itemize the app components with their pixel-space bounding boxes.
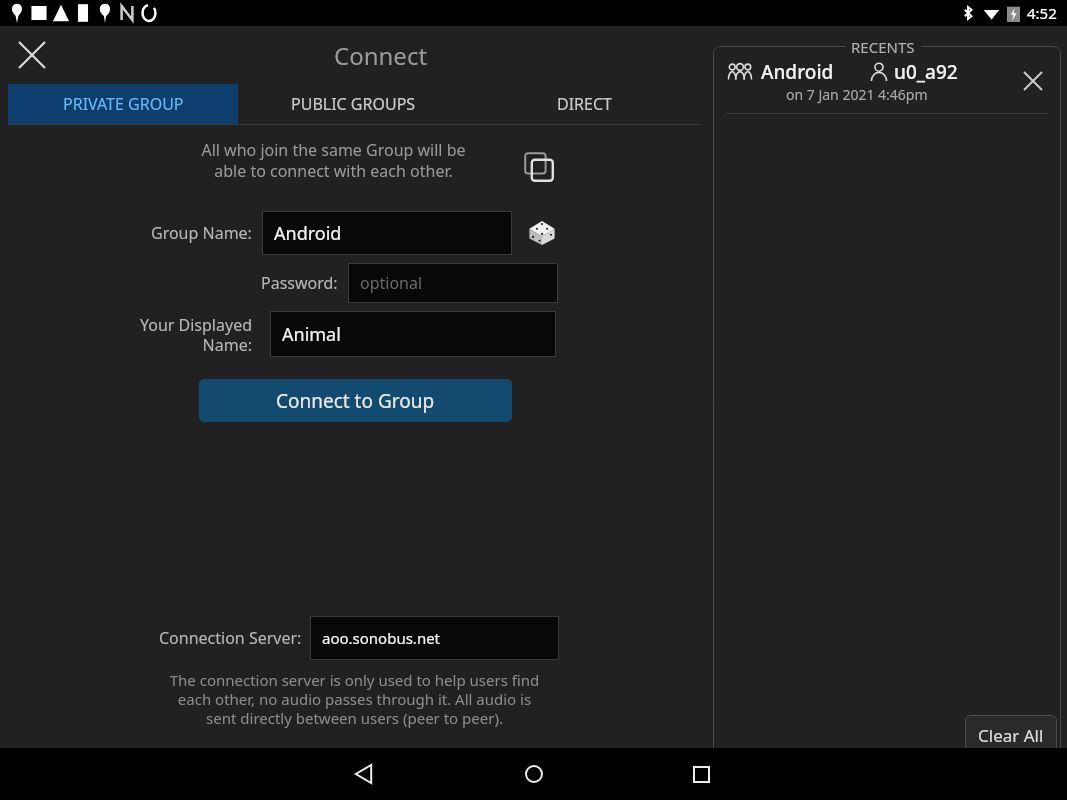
staticText: aoo.sonobus.net [322, 628, 441, 648]
button[interactable]: Recents [677, 750, 725, 798]
staticText: Your Displayed Name: [139, 314, 252, 355]
staticText: optional [360, 272, 423, 294]
staticText: DIRECT [557, 93, 612, 115]
button[interactable]: Clear All [965, 715, 1057, 755]
staticText: Clear All [978, 724, 1044, 747]
staticText: Android [761, 59, 834, 85]
staticText: The connection server is only used to he… [0, 670, 709, 728]
button[interactable]: Animal [270, 311, 556, 357]
button[interactable]: Close [8, 31, 56, 79]
staticText: Password: [261, 272, 338, 294]
staticText: Group Name: [151, 222, 252, 244]
staticText: on 7 Jan 2021 4:46pm [786, 85, 928, 104]
button[interactable]: Remove recent [1012, 60, 1054, 102]
button[interactable]: PUBLIC GROUPS [238, 84, 468, 124]
staticText: Connect to Group [276, 388, 435, 414]
button[interactable]: optional [348, 263, 558, 303]
button[interactable]: Android [714, 54, 1060, 110]
button[interactable]: aoo.sonobus.net [310, 616, 559, 660]
staticText: Animal [282, 322, 341, 347]
button[interactable]: Copy [515, 143, 563, 191]
button[interactable]: PRIVATE GROUP [8, 84, 238, 124]
staticText: PRIVATE GROUP [63, 93, 184, 115]
button[interactable]: Home [510, 750, 558, 798]
staticText: Connection Server: [159, 627, 302, 649]
button[interactable]: DIRECT [468, 84, 701, 124]
button[interactable]: Back [340, 750, 388, 798]
staticText: u0_a92 [894, 59, 958, 85]
button[interactable]: Android [262, 211, 512, 255]
staticText: Android [274, 221, 342, 246]
staticText: PUBLIC GROUPS [291, 93, 416, 115]
staticText: RECENTS [851, 37, 915, 57]
staticText: Connect [334, 39, 428, 72]
staticText: 4:52 [1027, 3, 1057, 23]
button[interactable]: Random name [520, 211, 564, 255]
staticText: All who join the same Group will be able… [201, 139, 466, 182]
button[interactable]: Connect to Group [199, 379, 512, 422]
